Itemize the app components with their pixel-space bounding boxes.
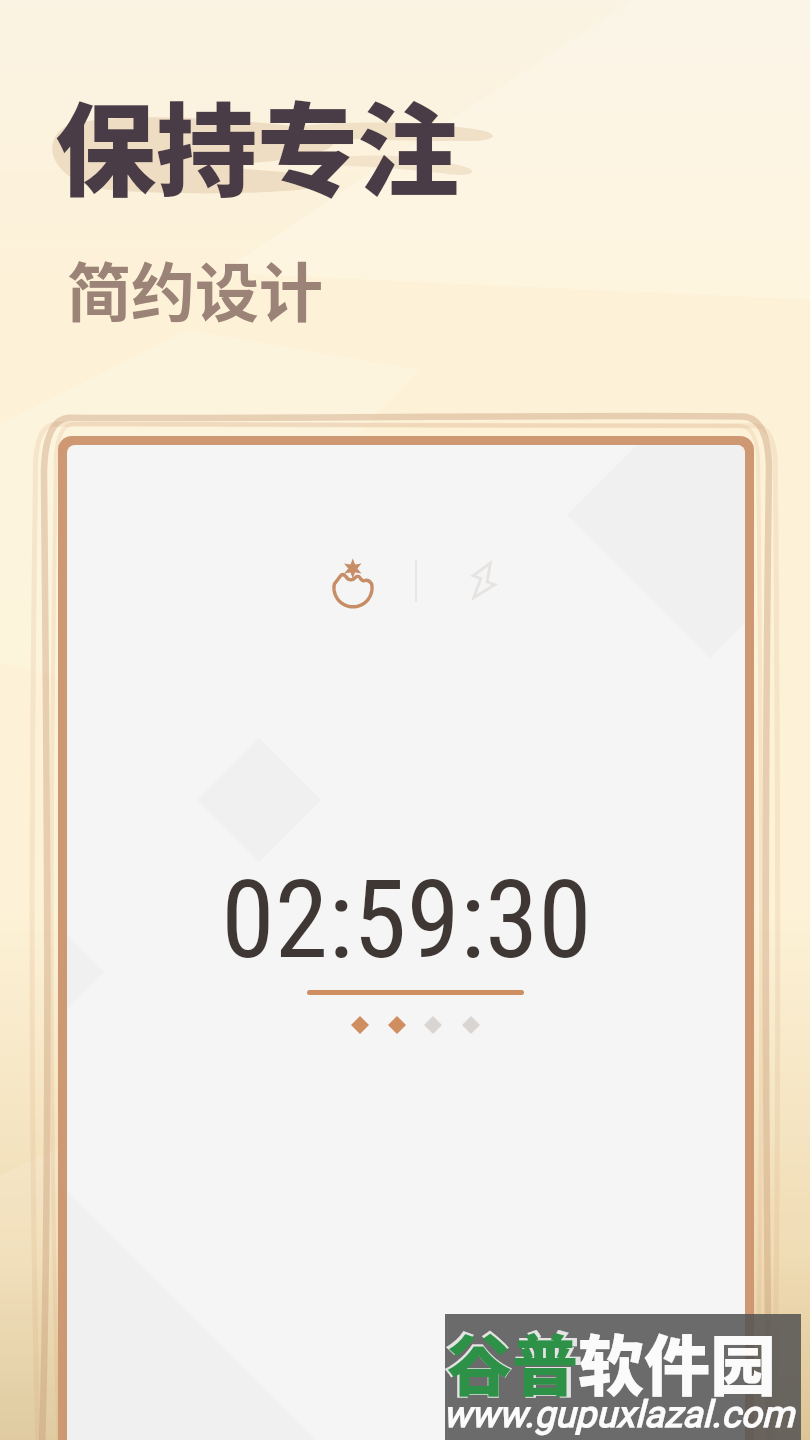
button[interactable]: Session 1 complete — [351, 1016, 369, 1034]
button[interactable]: Session 2 complete — [388, 1016, 406, 1034]
button[interactable]: 02:59:30 — [221, 857, 592, 984]
button[interactable]: Session 4 pending — [462, 1016, 480, 1034]
staticText: www.gupuxlazal.com — [443, 1393, 794, 1436]
button[interactable]: Session 3 pending — [424, 1016, 442, 1034]
staticText: 02:59:30 — [221, 857, 592, 984]
button[interactable]: Flash mode — [457, 555, 509, 605]
staticText: 简约设计 — [67, 242, 323, 335]
staticText: 软件园 — [578, 1313, 776, 1409]
staticText: 谷普 — [443, 1310, 583, 1411]
staticText: 保持专注 — [55, 71, 460, 217]
button[interactable]: Pomodoro mode — [327, 556, 379, 606]
staticText: 谷普 — [446, 1313, 578, 1409]
